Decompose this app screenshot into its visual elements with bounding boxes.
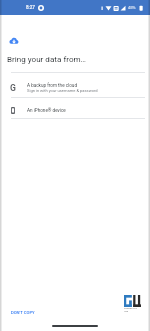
staticText: Sign in with your username & password [27,88,98,93]
button[interactable]: DON'T COPY [6,306,40,319]
staticText: A backup from the cloud [27,83,77,88]
button[interactable]: An iPhone® device [0,100,150,120]
button[interactable]: G [0,75,150,100]
staticText: DON'T COPY [11,310,35,315]
staticText: G [10,83,16,93]
staticText: An iPhone® device [27,108,66,113]
staticText: 45% [128,5,136,10]
staticText: GADGETS TO USE [124,307,141,313]
staticText: 8:27 [26,5,35,10]
staticText: Bring your data from… [7,54,87,63]
